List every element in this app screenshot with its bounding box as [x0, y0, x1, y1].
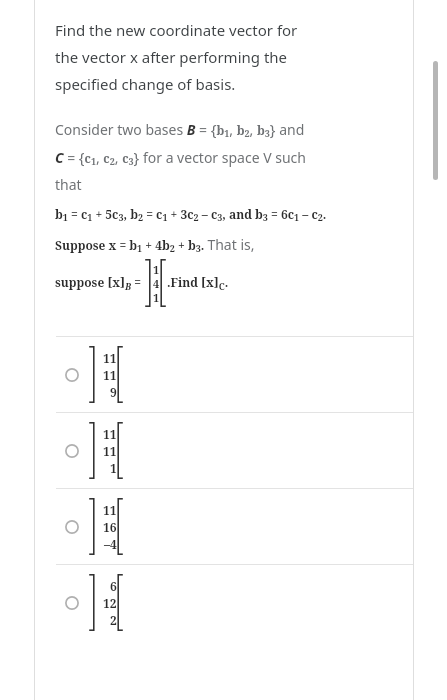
staticText: b1 = c1 + 5c3, b2 = c1 + 3c2 – c3, and b…: [55, 206, 327, 224]
staticText: 1: [153, 262, 160, 276]
staticText: suppose [x]B =: [55, 274, 142, 292]
staticText: 1: [110, 460, 117, 476]
button[interactable]: Select this answer: [35, 337, 413, 412]
staticText: .Find [x]C.: [167, 274, 229, 292]
staticText: that: [55, 175, 82, 194]
staticText: –4: [104, 536, 117, 552]
staticText: Consider two bases B = {b1, b2, b3} and: [55, 119, 305, 140]
staticText: 9: [110, 384, 117, 400]
staticText: 6: [110, 578, 117, 594]
staticText: 11: [103, 350, 117, 366]
other: Select this answer: [65, 368, 79, 382]
button[interactable]: Select this answer: [35, 565, 413, 640]
other: Select this answer: [65, 520, 79, 534]
staticText: 16: [103, 519, 117, 535]
staticText: C = {c1, c2, c3} for a vector space V su…: [55, 147, 306, 168]
staticText: Find the new coordinate vector for the v…: [55, 20, 298, 95]
button[interactable]: Select this answer: [35, 413, 413, 488]
staticText: 4: [153, 276, 160, 290]
other: Select this answer: [65, 596, 79, 610]
staticText: 1: [153, 290, 160, 304]
staticText: 11: [103, 426, 117, 442]
staticText: 11: [103, 367, 117, 383]
staticText: Suppose x = b1 + 4b2 + b3. That is,: [55, 235, 255, 255]
other: Select this answer: [65, 444, 79, 458]
staticText: 2: [110, 612, 117, 628]
staticText: 12: [103, 595, 117, 611]
staticText: 11: [103, 443, 117, 459]
button[interactable]: Select this answer: [35, 489, 413, 564]
staticText: 11: [103, 502, 117, 518]
